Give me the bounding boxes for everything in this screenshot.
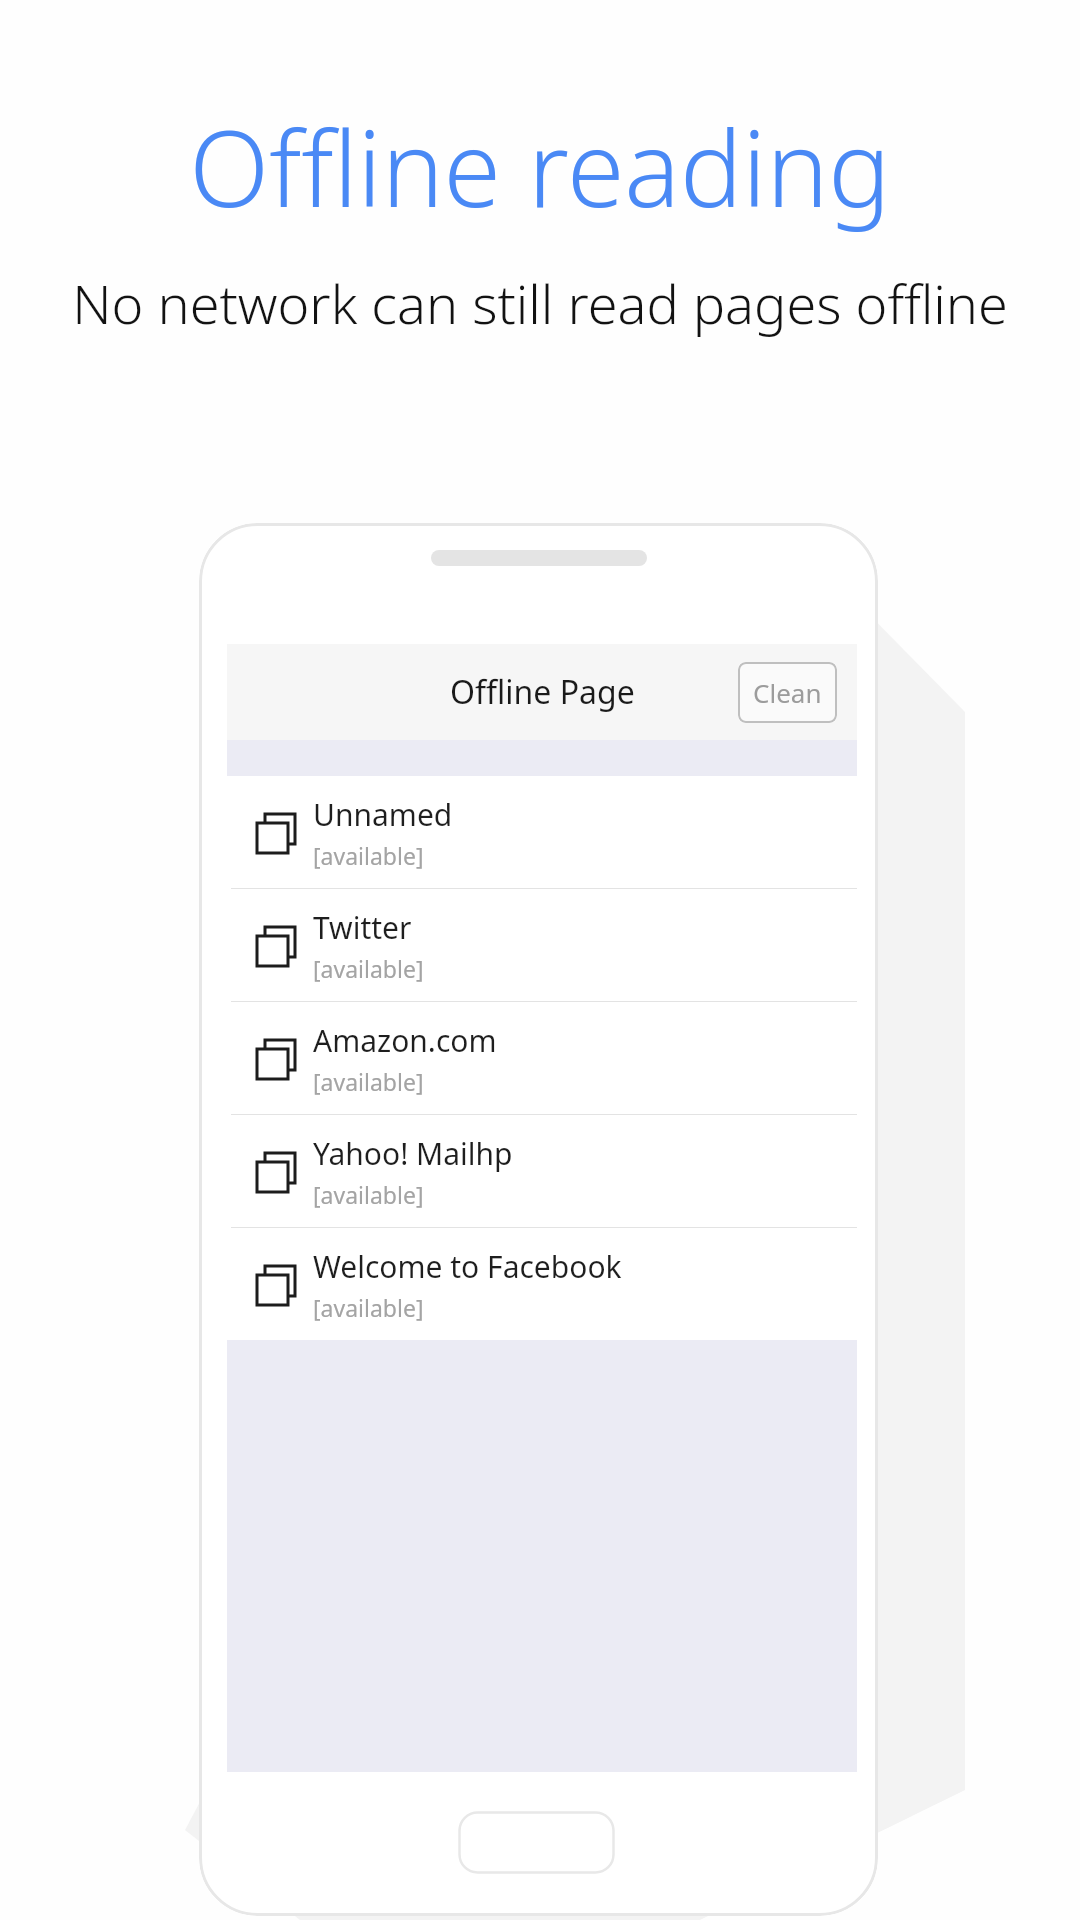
staticText: Yahoo! Mailhp <box>313 1133 513 1174</box>
staticText: [available] <box>313 1179 424 1210</box>
button[interactable]: Amazon.com <box>227 1002 857 1115</box>
staticText: [available] <box>313 953 424 984</box>
staticText: Unnamed <box>313 794 453 835</box>
staticText: Offline reading <box>189 96 891 236</box>
staticText: Twitter <box>313 907 412 948</box>
staticText: Welcome to Facebook <box>313 1246 622 1287</box>
staticText: No network can still read pages offline <box>72 266 1008 340</box>
staticText: [available] <box>313 840 424 871</box>
button[interactable]: Clean <box>738 662 837 723</box>
button[interactable]: Unnamed <box>227 776 857 889</box>
staticText: [available] <box>313 1066 424 1097</box>
staticText: Clean <box>753 675 822 710</box>
button[interactable]: Yahoo! Mailhp <box>227 1115 857 1228</box>
button[interactable]: Twitter <box>227 889 857 1002</box>
staticText: Offline Page <box>450 670 635 714</box>
button[interactable]: Home <box>458 1811 615 1874</box>
staticText: Amazon.com <box>313 1020 497 1061</box>
staticText: [available] <box>313 1292 424 1323</box>
button[interactable]: Welcome to Facebook <box>227 1228 857 1340</box>
